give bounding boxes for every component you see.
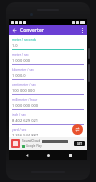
button[interactable]: meter / seconds (12, 36, 84, 50)
staticText: meter / seconds (12, 38, 37, 42)
staticText: yard / sec (12, 128, 27, 132)
staticText: SoundCloud (22, 139, 41, 143)
button[interactable]: meter / sec (12, 51, 84, 65)
staticText: 100 000 000 (12, 88, 35, 93)
staticText: 2 356 544 887 (12, 133, 38, 136)
button[interactable]: Home (44, 151, 52, 159)
button[interactable]: Recent apps (66, 151, 74, 159)
staticText: Google Play (26, 144, 42, 148)
staticText: 1 000.0 (12, 73, 26, 78)
staticText: centimeter / sec (12, 83, 37, 87)
staticText: millimeter / hour (12, 98, 38, 102)
button[interactable]: GET (74, 141, 85, 146)
button[interactable]: More options (78, 26, 86, 34)
staticText: inch / sec (12, 113, 26, 117)
staticText: meter / sec (12, 53, 29, 57)
button[interactable]: millimeter / hour (12, 96, 84, 110)
staticText: kilometer / sec (12, 68, 35, 72)
button[interactable]: Back (23, 151, 31, 159)
button[interactable]: inch / sec (12, 111, 84, 125)
button[interactable]: yard / sec (12, 126, 84, 136)
staticText: 1 000 000 (12, 58, 31, 63)
staticText: 8 402 629 021 (12, 118, 38, 123)
staticText: GET (77, 142, 82, 146)
button[interactable]: Navigate up (10, 26, 18, 34)
button[interactable]: Swap units (72, 124, 83, 135)
button[interactable]: SoundCloud (9, 137, 87, 150)
staticText: 1.0 (12, 43, 18, 48)
staticText: 1 000 000 000 (12, 103, 38, 108)
staticText: Converter (20, 27, 44, 34)
button[interactable]: centimeter / sec (12, 81, 84, 95)
button[interactable]: kilometer / sec (12, 66, 84, 80)
